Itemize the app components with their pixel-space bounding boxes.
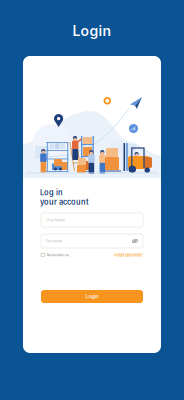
- staticText: Forgot password?: [114, 253, 143, 257]
- staticText: User Name: [46, 218, 65, 222]
- staticText: Login: [72, 22, 111, 39]
- staticText: Password: [46, 239, 62, 243]
- button[interactable]: Forgot password?: [114, 253, 143, 257]
- button[interactable]: Login: [41, 290, 143, 303]
- staticText: your account: [40, 197, 89, 206]
- staticText: Log in: [40, 188, 63, 197]
- staticText: Remember me: [46, 253, 69, 257]
- staticText: Login: [85, 293, 98, 299]
- button[interactable]: Remember me: [41, 253, 69, 257]
